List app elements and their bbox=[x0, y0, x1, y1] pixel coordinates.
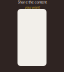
staticText: you want bbox=[24, 4, 39, 10]
staticText: Share the content bbox=[17, 0, 46, 4]
